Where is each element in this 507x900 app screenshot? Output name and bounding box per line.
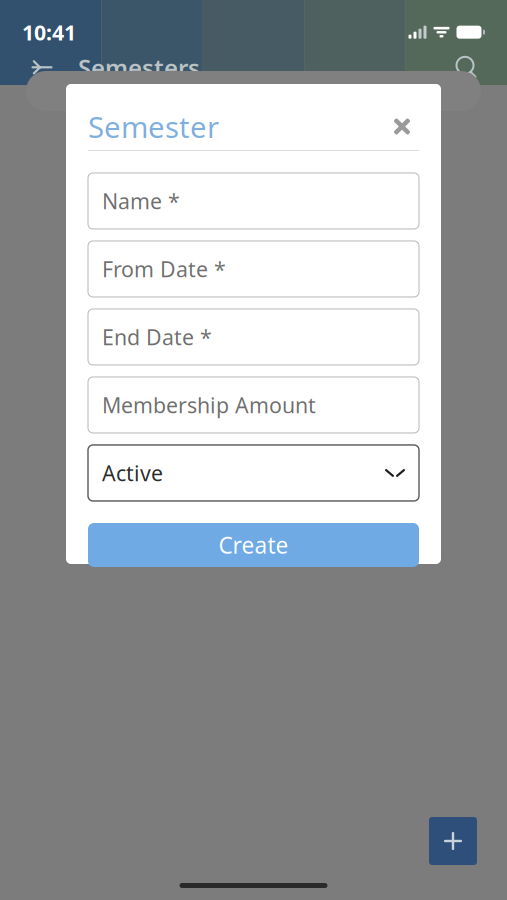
staticText: Semesters (78, 51, 200, 83)
staticText: Semester (88, 107, 219, 146)
button[interactable]: Search (447, 50, 487, 84)
button[interactable]: Close (385, 111, 419, 141)
staticText: Name * (102, 187, 180, 215)
button[interactable]: Name * (88, 173, 419, 229)
staticText: End Date * (102, 323, 212, 351)
staticText: Create (218, 530, 288, 560)
staticText: 10:41 (22, 18, 76, 46)
button[interactable]: Add semester (429, 817, 477, 865)
staticText: From Date * (102, 255, 226, 283)
staticText: Membership Amount (102, 391, 316, 419)
button[interactable]: Membership Amount (88, 377, 419, 433)
button[interactable]: Back (20, 50, 64, 84)
button[interactable]: End Date * (88, 309, 419, 365)
button[interactable]: Active (88, 445, 419, 501)
button[interactable]: Create (88, 523, 419, 567)
button[interactable]: From Date * (88, 241, 419, 297)
staticText: Active (102, 459, 163, 487)
